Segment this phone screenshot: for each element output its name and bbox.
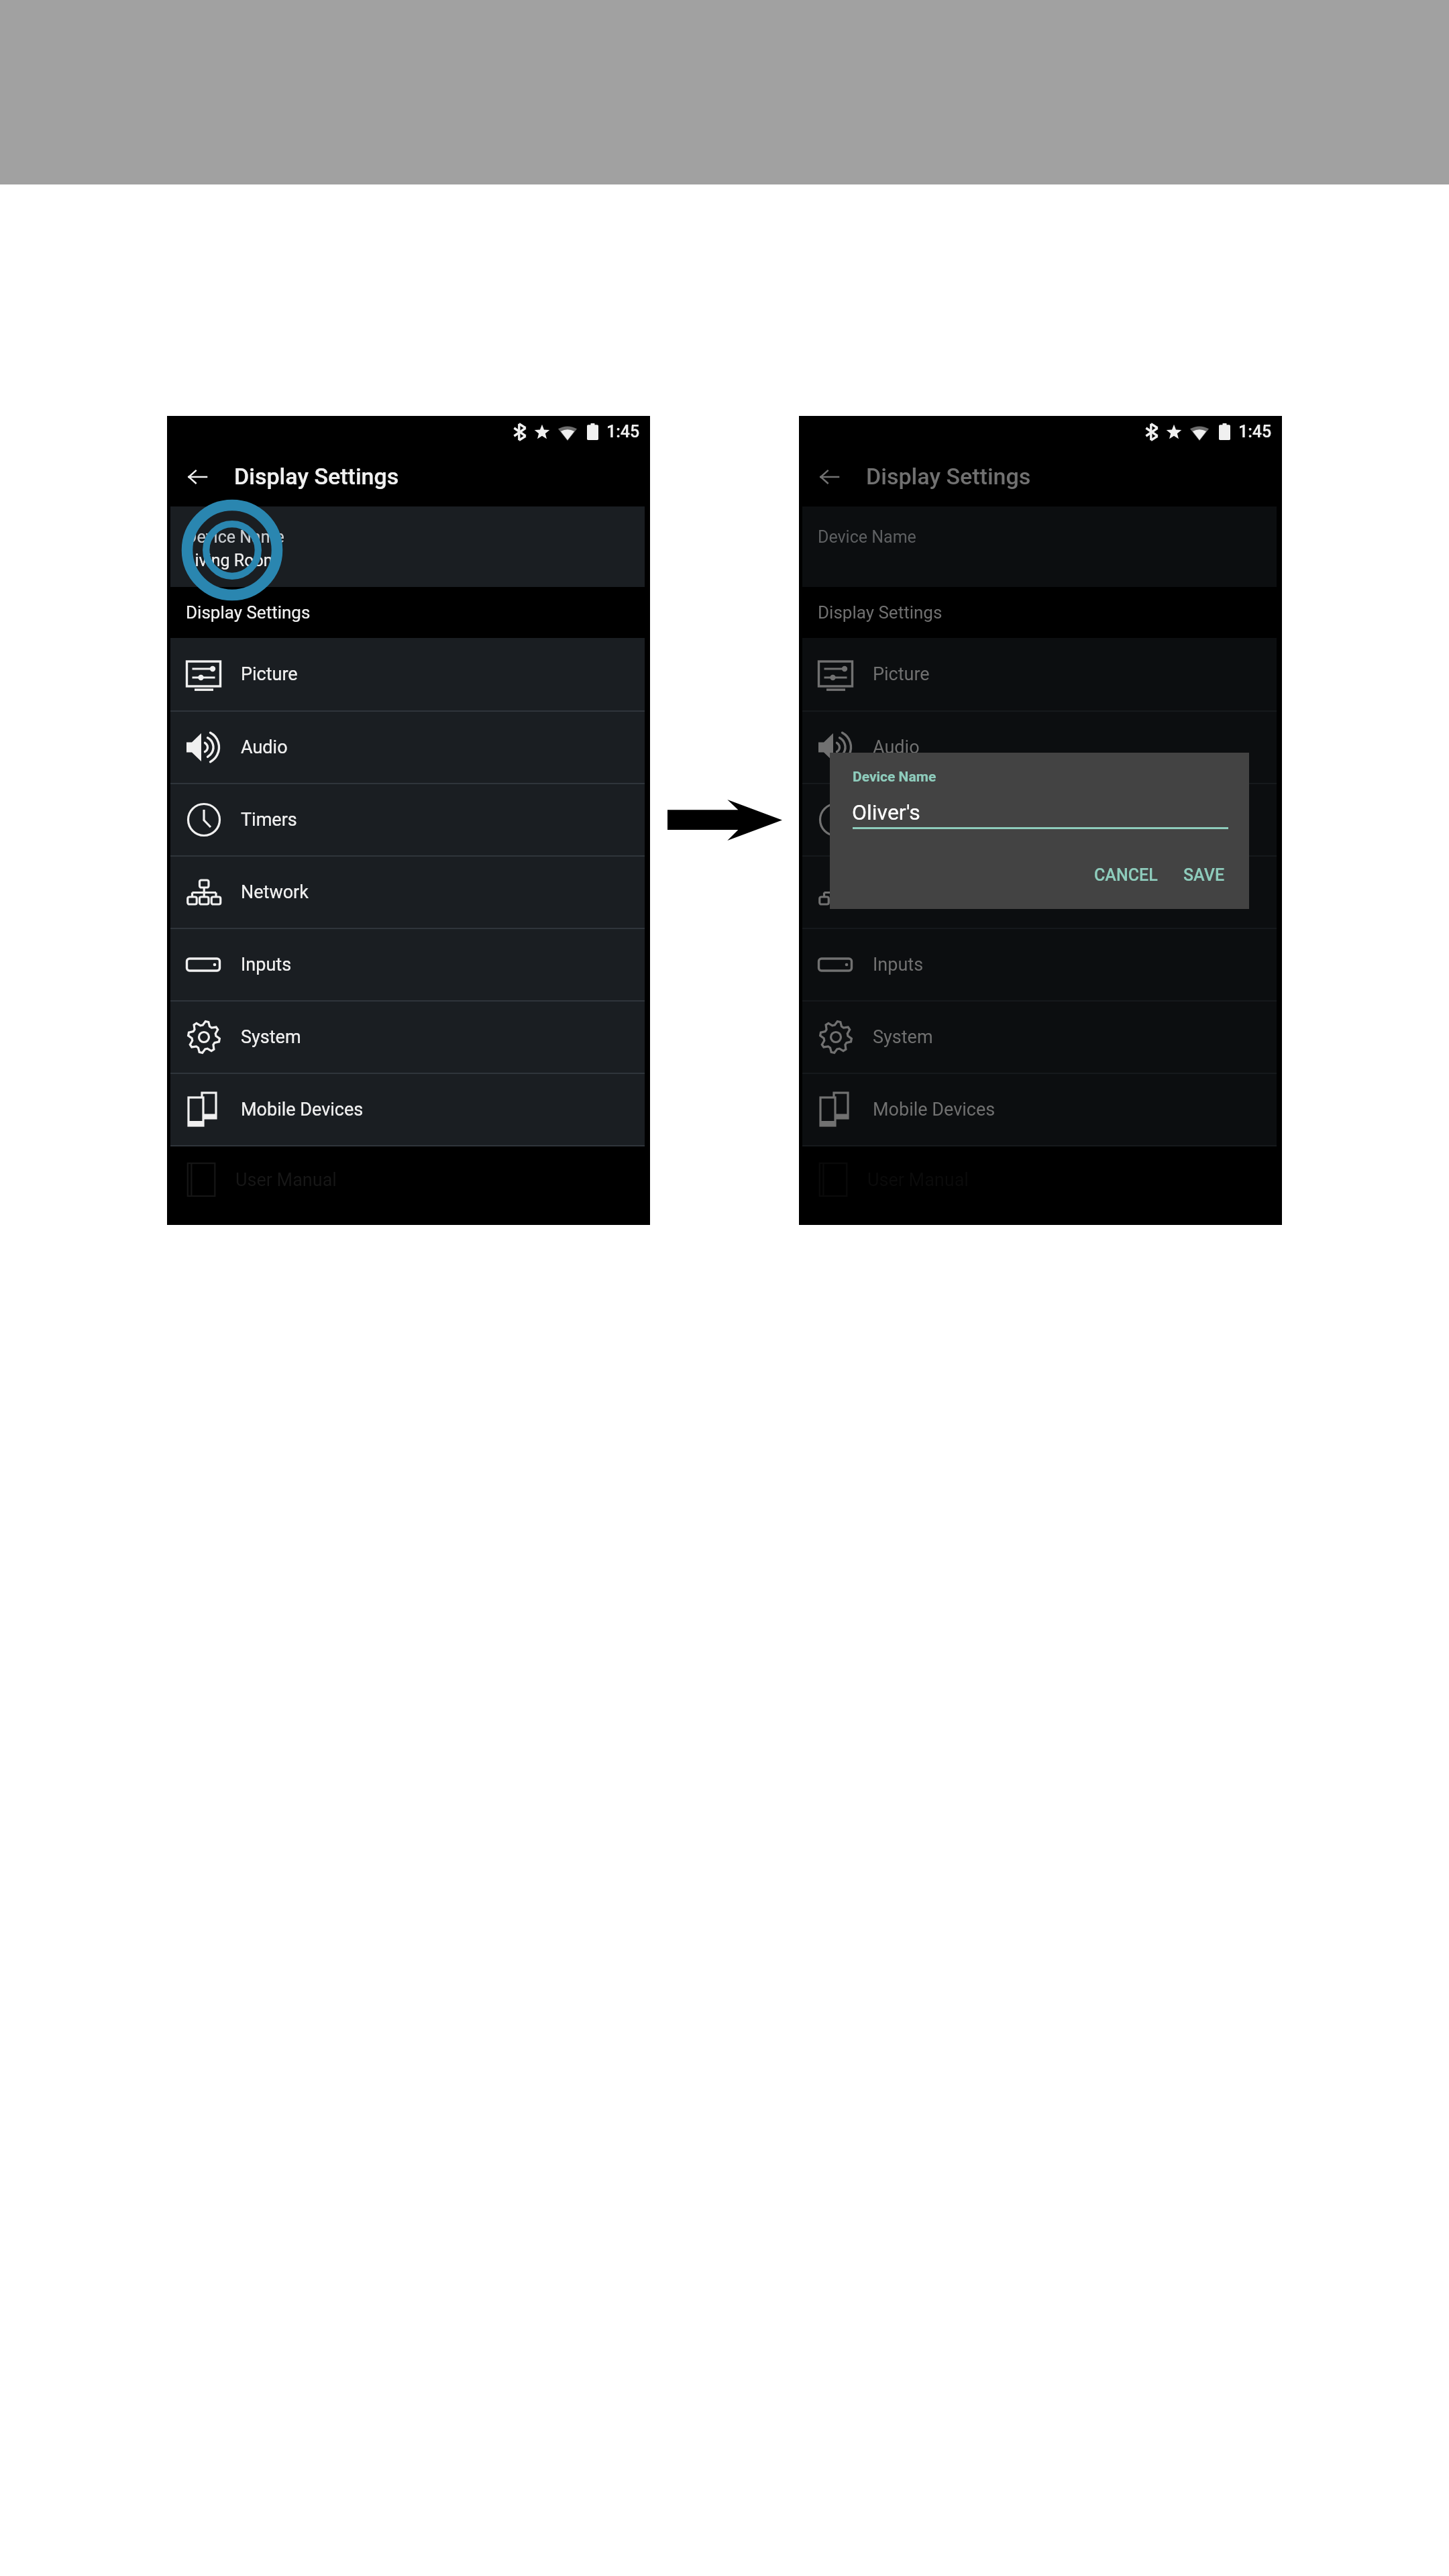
staticText: Picture: [241, 663, 298, 685]
button[interactable]: Device Name: [170, 506, 645, 587]
button[interactable]: Inputs: [170, 929, 645, 1000]
staticText: Inputs: [241, 954, 292, 975]
button[interactable]: Picture: [170, 638, 645, 710]
staticText: User Manual: [867, 1169, 969, 1191]
button[interactable]: System: [170, 1002, 645, 1073]
button[interactable]: Network: [170, 857, 645, 928]
staticText: Timers: [241, 809, 297, 830]
button[interactable]: Timers: [802, 784, 1277, 855]
staticText: User Manual: [235, 1169, 337, 1191]
button[interactable]: Audio: [170, 712, 645, 783]
button[interactable]: Network: [802, 857, 1277, 928]
staticText: Mobile Devices: [873, 1099, 996, 1120]
staticText: Oliver's: [852, 800, 920, 825]
button[interactable]: Mobile Devices: [170, 1074, 645, 1145]
button[interactable]: Inputs: [802, 929, 1277, 1000]
button[interactable]: Picture: [802, 638, 1277, 710]
button[interactable]: CANCEL: [1083, 859, 1169, 892]
staticText: Display Settings: [866, 463, 1031, 490]
staticText: Inputs: [873, 954, 924, 975]
staticText: Network: [241, 881, 309, 903]
button[interactable]: Audio: [802, 712, 1277, 783]
staticText: Display Settings: [818, 602, 943, 623]
staticText: Living Room: [186, 551, 278, 570]
staticText: 1:45: [606, 422, 640, 441]
staticText: 1:45: [1238, 422, 1272, 441]
staticText: Picture: [873, 663, 930, 685]
staticText: Device Name: [853, 769, 936, 786]
staticText: Audio: [873, 737, 920, 758]
button[interactable]: System: [802, 1002, 1277, 1073]
button[interactable]: User Manual: [170, 1146, 645, 1225]
staticText: Mobile Devices: [241, 1099, 364, 1120]
button[interactable]: Device Name: [802, 506, 1277, 587]
button[interactable]: SAVE: [1173, 859, 1236, 892]
staticText: Display Settings: [186, 602, 311, 623]
staticText: Timers: [873, 809, 929, 830]
staticText: Display Settings: [234, 463, 399, 490]
button[interactable]: Back: [176, 451, 218, 506]
staticText: Device Name: [186, 527, 284, 547]
button[interactable]: Timers: [170, 784, 645, 855]
button[interactable]: Back: [808, 451, 850, 506]
staticText: System: [873, 1026, 933, 1048]
staticText: Audio: [241, 737, 288, 758]
staticText: CANCEL: [1094, 865, 1158, 885]
button[interactable]: Mobile Devices: [802, 1074, 1277, 1145]
staticText: Device Name: [818, 527, 916, 547]
staticText: System: [241, 1026, 301, 1048]
staticText: SAVE: [1183, 865, 1225, 885]
